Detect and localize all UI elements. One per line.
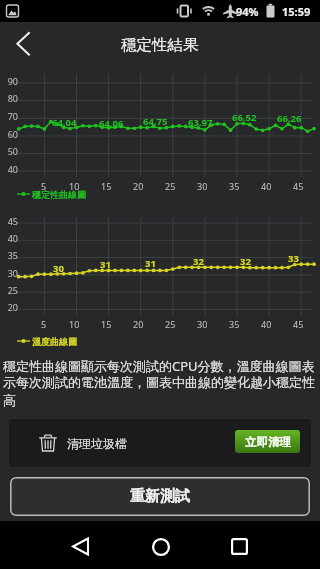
staticText: 立即清理	[245, 435, 291, 449]
staticText: 清理垃圾檔	[67, 436, 127, 451]
staticText: 30	[197, 180, 208, 192]
staticText: 45	[293, 318, 304, 330]
staticText: 25	[7, 284, 18, 296]
staticText: 32	[240, 255, 251, 268]
staticText: 5	[41, 318, 47, 330]
staticText: 溫度曲線圖	[32, 336, 77, 347]
staticText: 40	[7, 163, 18, 175]
button[interactable]: 立即清理	[235, 430, 300, 453]
staticText: 高	[3, 392, 16, 408]
staticText: 穩定性曲線圖顯示每次測試的CPU分數，溫度曲線圖表顯	[3, 357, 320, 374]
staticText: 80	[7, 92, 18, 104]
staticText: 70	[7, 110, 18, 122]
staticText: 30	[53, 262, 64, 275]
staticText: 32	[193, 255, 204, 268]
staticText: 40	[261, 318, 272, 330]
staticText: 31	[145, 257, 156, 270]
staticText: 45	[293, 180, 304, 192]
button[interactable]: Home	[137, 523, 184, 569]
staticText: 35	[7, 249, 18, 261]
staticText: 25	[165, 318, 176, 330]
button[interactable]: 清理垃圾檔	[9, 419, 311, 467]
staticText: 33	[288, 252, 299, 265]
staticText: 30	[7, 267, 18, 279]
staticText: 40	[261, 180, 272, 192]
button[interactable]: Back	[0, 22, 47, 67]
staticText: 示每次測試的電池溫度，圖表中曲線的變化越小穩定性越	[3, 374, 320, 391]
staticText: 15	[101, 180, 112, 192]
staticText: 90	[7, 75, 18, 87]
staticText: 66.52	[232, 111, 257, 124]
staticText: 40	[7, 232, 18, 244]
staticText: 66.26	[277, 112, 302, 125]
staticText: 10	[69, 318, 80, 330]
staticText: 20	[7, 301, 18, 313]
staticText: 穩定性結果	[121, 35, 199, 55]
staticText: 20	[133, 180, 144, 192]
staticText: 50	[7, 145, 18, 157]
button[interactable]: 重新測試	[10, 477, 310, 516]
button[interactable]: Recents	[216, 523, 263, 569]
staticText: 重新測試	[130, 487, 190, 506]
staticText: 20	[133, 318, 144, 330]
staticText: 94%	[236, 4, 259, 19]
staticText: 35	[229, 180, 240, 192]
staticText: 35	[229, 318, 240, 330]
staticText: 63.97	[188, 116, 213, 129]
staticText: 15:59	[282, 4, 311, 19]
staticText: 64.06	[99, 117, 124, 130]
staticText: 31	[100, 258, 111, 271]
staticText: 25	[165, 180, 176, 192]
staticText: 10	[69, 180, 80, 192]
staticText: 45	[7, 215, 18, 227]
staticText: 5	[41, 180, 47, 192]
staticText: 15	[101, 318, 112, 330]
staticText: 64.04	[52, 116, 77, 129]
staticText: 穩定性曲線圖	[32, 189, 86, 200]
button[interactable]: Back	[57, 523, 104, 569]
staticText: 60	[7, 128, 18, 140]
staticText: 30	[197, 318, 208, 330]
staticText: 64.75	[143, 115, 168, 128]
